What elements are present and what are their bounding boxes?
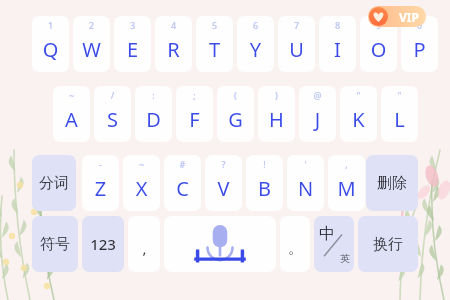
button[interactable]: VIP [368, 6, 426, 27]
button[interactable]: ) [258, 86, 295, 142]
button[interactable]: ' [287, 155, 324, 211]
staticText: S [94, 106, 131, 133]
staticText: / [94, 89, 131, 101]
staticText: 删除 [377, 174, 407, 193]
button[interactable]: ; [176, 86, 213, 142]
staticText: - [82, 158, 119, 170]
staticText: 0 [401, 19, 438, 31]
staticText: ~ [53, 89, 90, 101]
staticText: 1 [32, 19, 69, 31]
staticText: 7 [278, 19, 315, 31]
button[interactable]: ~ [123, 155, 160, 211]
button[interactable]: : [135, 86, 172, 142]
staticText: P [401, 36, 438, 63]
staticText: 5 [196, 19, 233, 31]
button[interactable]: / [94, 86, 131, 142]
button[interactable]: ~ [53, 86, 90, 142]
button[interactable]: ( [217, 86, 254, 142]
button[interactable]: 5 [196, 16, 233, 72]
button[interactable]: 7 [278, 16, 315, 72]
staticText: 换行 [373, 235, 403, 254]
staticText: B [246, 175, 283, 202]
staticText: W [73, 36, 110, 63]
button[interactable]: # [164, 155, 201, 211]
staticText: R [155, 36, 192, 63]
staticText: , [328, 158, 365, 170]
staticText: : [135, 89, 172, 101]
staticText: Y [237, 36, 274, 63]
button[interactable]: 1 [32, 16, 69, 72]
staticText: 123 [90, 234, 116, 254]
button[interactable]: 0 [401, 16, 438, 72]
staticText: J [299, 106, 336, 133]
staticText: 分词 [39, 174, 69, 193]
staticText: ) [258, 89, 295, 101]
staticText: 2 [73, 19, 110, 31]
staticText: K [340, 106, 377, 133]
button[interactable]: 4 [155, 16, 192, 72]
staticText: E [114, 36, 151, 63]
staticText: G [217, 106, 254, 133]
staticText: O [360, 36, 397, 63]
staticText: D [135, 106, 172, 133]
button[interactable]: 分词 [32, 155, 76, 211]
button[interactable]: " [381, 86, 418, 142]
staticText: Z [82, 175, 119, 202]
staticText: V [205, 175, 242, 202]
staticText: N [287, 175, 324, 202]
button[interactable]: 6 [237, 16, 274, 72]
staticText: # [164, 158, 201, 170]
staticText: @ [299, 89, 336, 101]
staticText: T [196, 36, 233, 63]
button[interactable]: ? [205, 155, 242, 211]
staticText: VIP [399, 9, 419, 25]
staticText: ( [217, 89, 254, 101]
staticText: A [53, 106, 90, 133]
button[interactable]: Space / Voice input [164, 216, 276, 272]
staticText: 。 [288, 239, 303, 258]
button[interactable]: @ [299, 86, 336, 142]
staticText: M [328, 175, 365, 202]
staticText: L [381, 106, 418, 133]
staticText: , [142, 238, 147, 258]
staticText: 3 [114, 19, 151, 31]
staticText: 英 [340, 252, 350, 265]
staticText: 符号 [40, 235, 70, 254]
button[interactable]: 3 [114, 16, 151, 72]
staticText: 中 [319, 224, 335, 244]
staticText: C [164, 175, 201, 202]
staticText: X [123, 175, 160, 202]
staticText: 6 [237, 19, 274, 31]
button[interactable]: Chinese / English toggle [314, 216, 354, 272]
staticText: U [278, 36, 315, 63]
button[interactable]: 删除 [366, 155, 418, 211]
button[interactable]: , [328, 155, 365, 211]
button[interactable]: 123 [82, 216, 124, 272]
button[interactable]: 8 [319, 16, 356, 72]
button[interactable]: , [128, 216, 160, 272]
staticText: ! [246, 158, 283, 170]
button[interactable]: " [340, 86, 377, 142]
staticText: I [319, 36, 356, 63]
staticText: " [340, 89, 377, 101]
staticText: " [381, 89, 418, 101]
staticText: F [176, 106, 213, 133]
button[interactable]: 9 [360, 16, 397, 72]
button[interactable]: 。 [280, 216, 310, 272]
button[interactable]: ! [246, 155, 283, 211]
button[interactable]: 2 [73, 16, 110, 72]
button[interactable]: 符号 [32, 216, 78, 272]
staticText: ~ [123, 158, 160, 170]
staticText: 8 [319, 19, 356, 31]
staticText: ' [287, 158, 324, 170]
staticText: 4 [155, 19, 192, 31]
button[interactable]: 换行 [358, 216, 418, 272]
staticText: ; [176, 89, 213, 101]
staticText: Q [32, 36, 69, 63]
staticText: 9 [360, 19, 397, 31]
staticText: ? [205, 158, 242, 170]
button[interactable]: - [82, 155, 119, 211]
staticText: H [258, 106, 295, 133]
